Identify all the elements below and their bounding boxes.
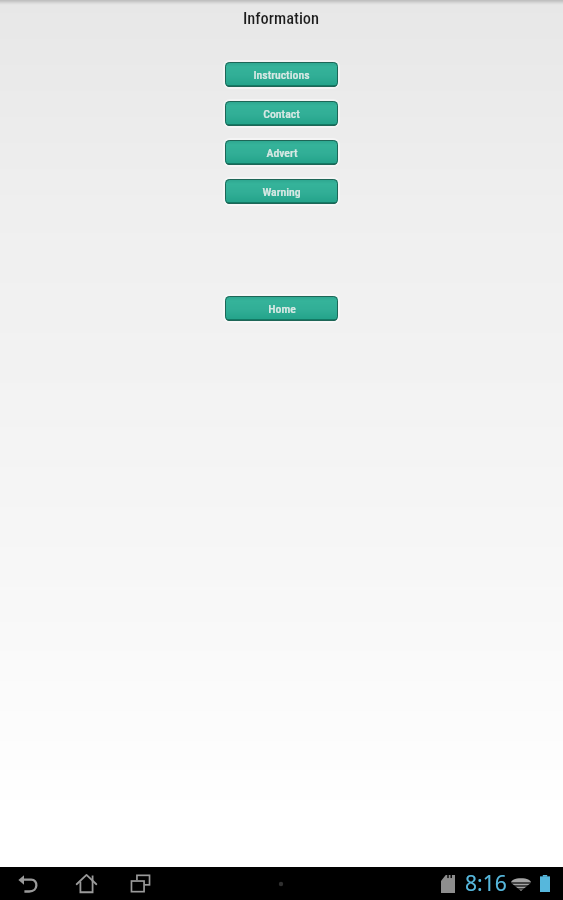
button[interactable]: Back <box>10 867 46 900</box>
staticText: 8:16 <box>465 869 507 898</box>
button[interactable]: Warning <box>223 177 340 206</box>
staticText: Warning <box>262 185 301 199</box>
button[interactable]: Advert <box>223 138 340 167</box>
button[interactable]: Contact <box>223 99 340 128</box>
staticText: Advert <box>266 146 298 160</box>
button[interactable]: Home <box>68 867 104 900</box>
staticText: Instructions <box>253 68 310 82</box>
button[interactable]: Home <box>223 294 340 323</box>
staticText: Contact <box>263 107 300 121</box>
button[interactable]: Instructions <box>223 60 340 89</box>
staticText: Home <box>268 302 296 316</box>
button[interactable]: Recent apps <box>122 867 158 900</box>
staticText: Information <box>243 9 320 28</box>
